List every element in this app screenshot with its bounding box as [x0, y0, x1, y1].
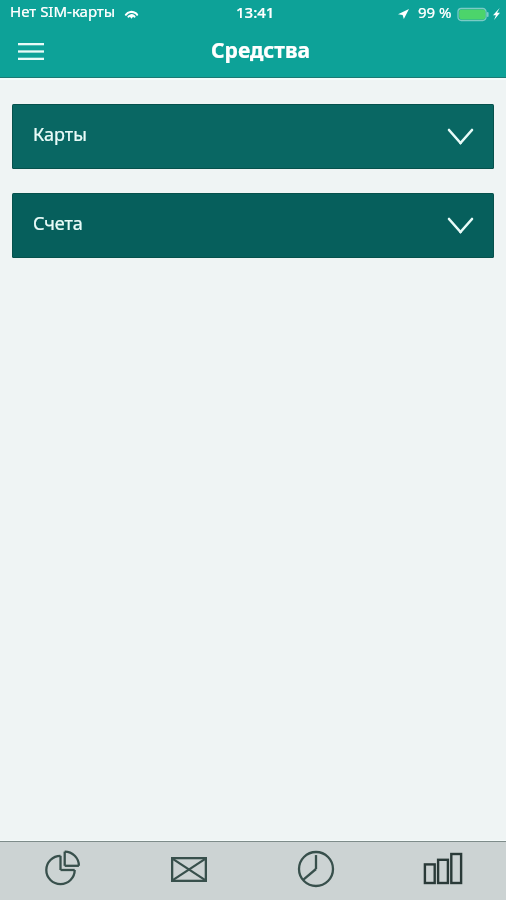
button[interactable]: Отчёты — [0, 842, 126, 900]
button[interactable]: Почта — [126, 842, 252, 900]
staticText: Счета — [33, 211, 83, 236]
staticText: 13:41 — [236, 2, 275, 22]
button[interactable]: Счета — [13, 194, 493, 257]
button[interactable]: Карты — [13, 105, 493, 168]
button[interactable]: Статистика — [379, 842, 506, 900]
button[interactable]: История — [252, 842, 379, 900]
staticText: Нет SIM-карты — [10, 1, 116, 21]
staticText: Средства — [211, 36, 310, 65]
staticText: Карты — [33, 122, 87, 147]
staticText: 99 % — [418, 2, 452, 22]
button[interactable]: Меню — [9, 29, 53, 73]
